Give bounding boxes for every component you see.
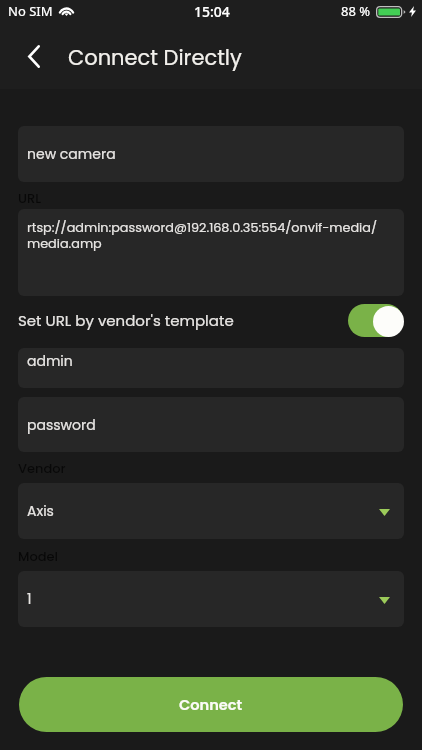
button[interactable]: Connect [19, 677, 403, 732]
staticText: Connect Directly [68, 43, 242, 72]
button[interactable]: new camera [18, 126, 404, 182]
button[interactable]: Back [0, 30, 56, 87]
button[interactable]: Axis [18, 483, 404, 539]
button[interactable]: password [18, 397, 404, 452]
staticText: new camera [27, 144, 116, 164]
staticText: Vendor [18, 459, 66, 477]
staticText: No SIM [8, 2, 53, 20]
staticText: 1 [27, 589, 32, 609]
staticText: 15:04 [194, 2, 230, 21]
staticText: Axis [27, 501, 54, 521]
other: Expand [379, 509, 390, 516]
staticText: 88 % [341, 2, 371, 20]
button[interactable]: rtsp://admin:password@192.168.0.35:554/o… [18, 209, 404, 296]
staticText: Model [18, 547, 59, 565]
staticText: rtsp://admin:password@192.168.0.35:554/o… [27, 219, 395, 253]
staticText: Set URL by vendor's template [18, 310, 234, 331]
button[interactable]: 1 [18, 571, 404, 627]
staticText: password [27, 415, 96, 435]
other: Expand [379, 597, 390, 604]
staticText: URL [18, 189, 41, 207]
button[interactable]: Set URL by vendor's template [348, 304, 404, 337]
staticText: admin [27, 351, 73, 371]
staticText: Connect [179, 695, 243, 715]
button[interactable]: admin [18, 348, 404, 388]
